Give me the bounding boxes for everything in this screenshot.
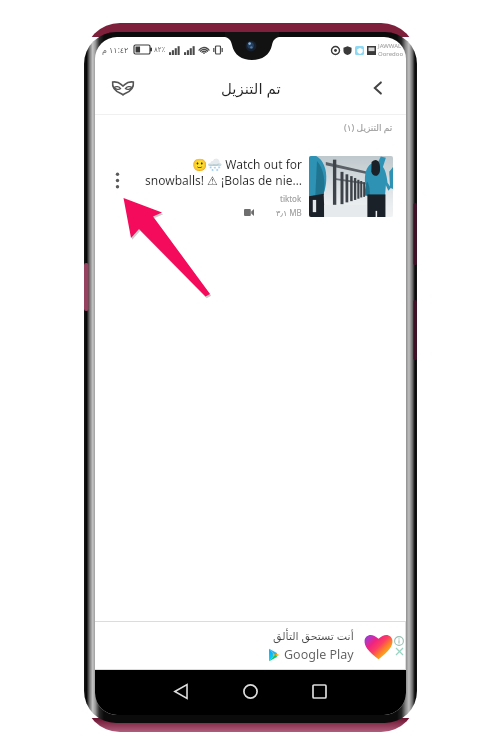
staticText: ٨٢٪ [154,46,166,54]
button[interactable]: Back [362,72,394,104]
staticText: snowballs! ⚠️ ¡Bolas de nie… [145,172,302,188]
button[interactable]: Private mode [107,72,139,104]
staticText: tiktok [280,193,302,204]
staticText: JAWWAL [378,42,402,50]
staticText: تم التنزيل [221,78,281,98]
button[interactable]: Recents [302,674,336,708]
staticText: Google Play [284,646,354,663]
button[interactable]: More options [95,139,406,221]
button[interactable]: More options [103,166,131,194]
button[interactable]: Close ad [395,647,404,656]
button[interactable]: Home [233,674,267,708]
staticText: Ooredoo [378,50,404,58]
staticText: أنت تستحق التألق [273,628,354,643]
staticText: ٣٫١ MB [276,207,302,218]
button[interactable]: Back [164,674,198,708]
button[interactable]: أنت تستحق التألق [95,621,406,670]
staticText: ١١:٤٢ م [102,44,129,55]
button[interactable]: Ad info [394,636,404,646]
staticText: 🙂🌨 Watch out for [192,156,302,172]
staticText: تم التنزيل (١) [344,121,393,133]
